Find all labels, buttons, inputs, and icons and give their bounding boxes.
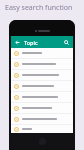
button[interactable] [11, 48, 73, 58]
button[interactable] [11, 92, 73, 102]
button[interactable]: Back [13, 38, 22, 47]
button[interactable] [11, 59, 73, 69]
button[interactable] [11, 114, 73, 124]
button[interactable] [11, 103, 73, 113]
button[interactable]: Search [62, 38, 71, 47]
staticText: Topic [24, 39, 62, 46]
button[interactable] [11, 125, 73, 133]
button[interactable] [11, 70, 73, 80]
staticText: Easy search function [5, 3, 73, 13]
button[interactable] [11, 81, 73, 91]
button[interactable]: Home [39, 138, 46, 145]
